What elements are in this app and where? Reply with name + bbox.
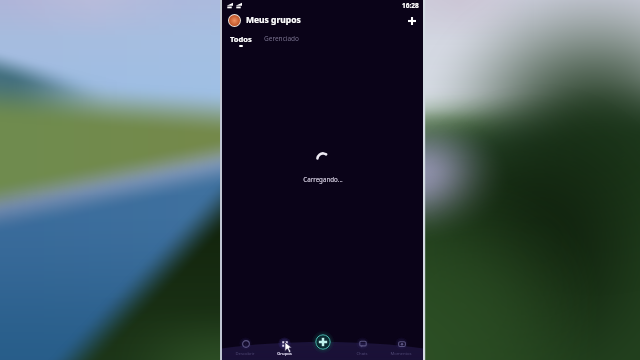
button[interactable]: Descobrir	[228, 330, 262, 357]
staticText: Meus grupos	[246, 14, 301, 26]
staticText: Gerenciado	[264, 34, 300, 43]
staticText: Momentos	[390, 351, 412, 357]
button[interactable]: Chats	[345, 330, 379, 357]
button[interactable]: Create	[315, 334, 331, 350]
staticText: Grupos	[277, 351, 292, 357]
staticText: Todos	[230, 34, 252, 44]
staticText: Descobrir	[235, 351, 255, 357]
staticText: Chats	[356, 351, 368, 357]
staticText: Carregando...	[303, 175, 343, 183]
button[interactable]: Gerenciado	[262, 34, 302, 43]
button[interactable]: Momentos	[384, 330, 418, 357]
button[interactable]: Profile	[228, 14, 241, 27]
button[interactable]: Todos	[227, 34, 255, 47]
staticText: 16:28	[402, 1, 419, 10]
button[interactable]: Add	[404, 13, 419, 28]
button[interactable]: Grupos	[267, 330, 301, 357]
